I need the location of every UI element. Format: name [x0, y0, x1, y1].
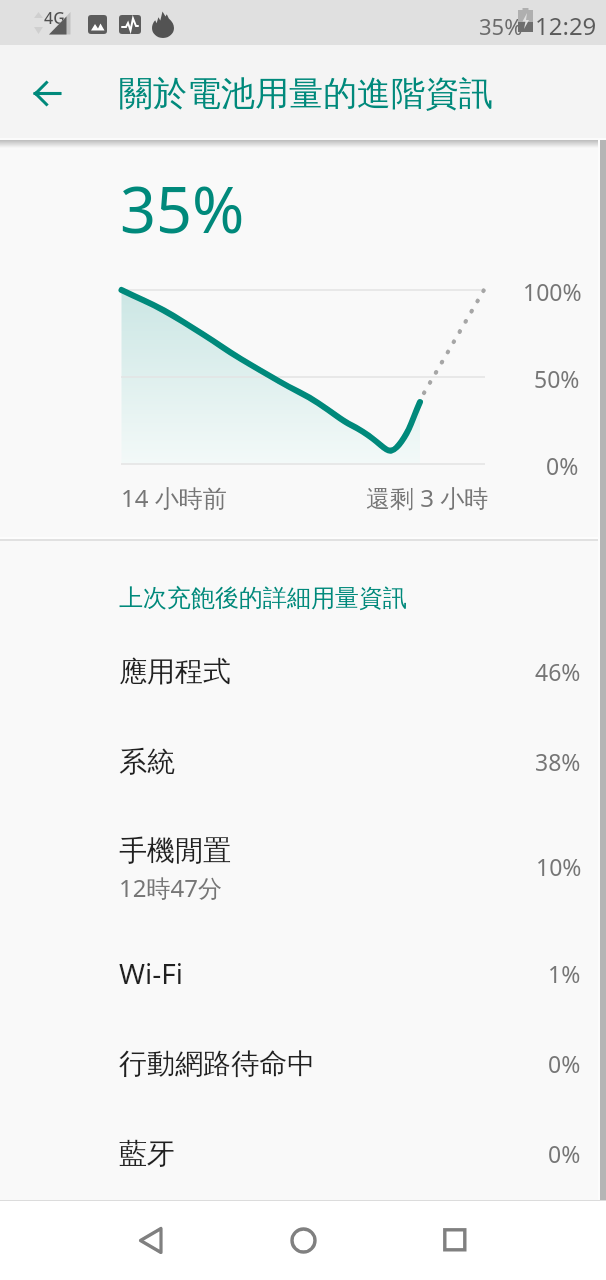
button[interactable]: Back: [22, 68, 73, 119]
staticText: 上次充飽後的詳細用量資訊: [119, 583, 407, 613]
staticText: 35%: [120, 166, 245, 252]
staticText: 12時47分: [119, 871, 222, 904]
button[interactable]: 應用程式: [0, 626, 606, 716]
staticText: 行動網路待命中: [119, 1046, 315, 1081]
staticText: 14 小時前: [121, 481, 227, 514]
staticText: 關於電池用量的進階資訊: [119, 72, 493, 115]
staticText: 0%: [548, 1048, 581, 1079]
button[interactable]: Home: [265, 1201, 341, 1280]
staticText: 50%: [534, 363, 580, 394]
staticText: 35%: [479, 11, 523, 41]
button[interactable]: 手機閒置: [0, 800, 606, 923]
staticText: 0%: [546, 450, 579, 481]
staticText: 100%: [523, 276, 582, 307]
staticText: 藍牙: [119, 1136, 175, 1171]
staticText: 還剩 3 小時: [366, 481, 489, 514]
staticText: 10%: [536, 851, 582, 882]
staticText: 1%: [548, 958, 581, 989]
button[interactable]: Wi-Fi: [0, 928, 606, 1018]
staticText: 應用程式: [119, 654, 231, 689]
staticText: 4G: [44, 7, 65, 29]
button[interactable]: 系統: [0, 716, 606, 806]
button[interactable]: Recent apps: [417, 1201, 493, 1280]
staticText: 系統: [119, 744, 175, 779]
button[interactable]: 藍牙: [0, 1108, 606, 1198]
staticText: 38%: [535, 746, 581, 777]
staticText: 0%: [548, 1138, 581, 1169]
staticText: 12:29: [535, 9, 597, 42]
staticText: Wi-Fi: [119, 954, 184, 992]
button[interactable]: Back: [113, 1201, 189, 1280]
button[interactable]: 行動網路待命中: [0, 1018, 606, 1108]
staticText: 46%: [535, 656, 581, 687]
staticText: 手機閒置: [119, 833, 231, 868]
